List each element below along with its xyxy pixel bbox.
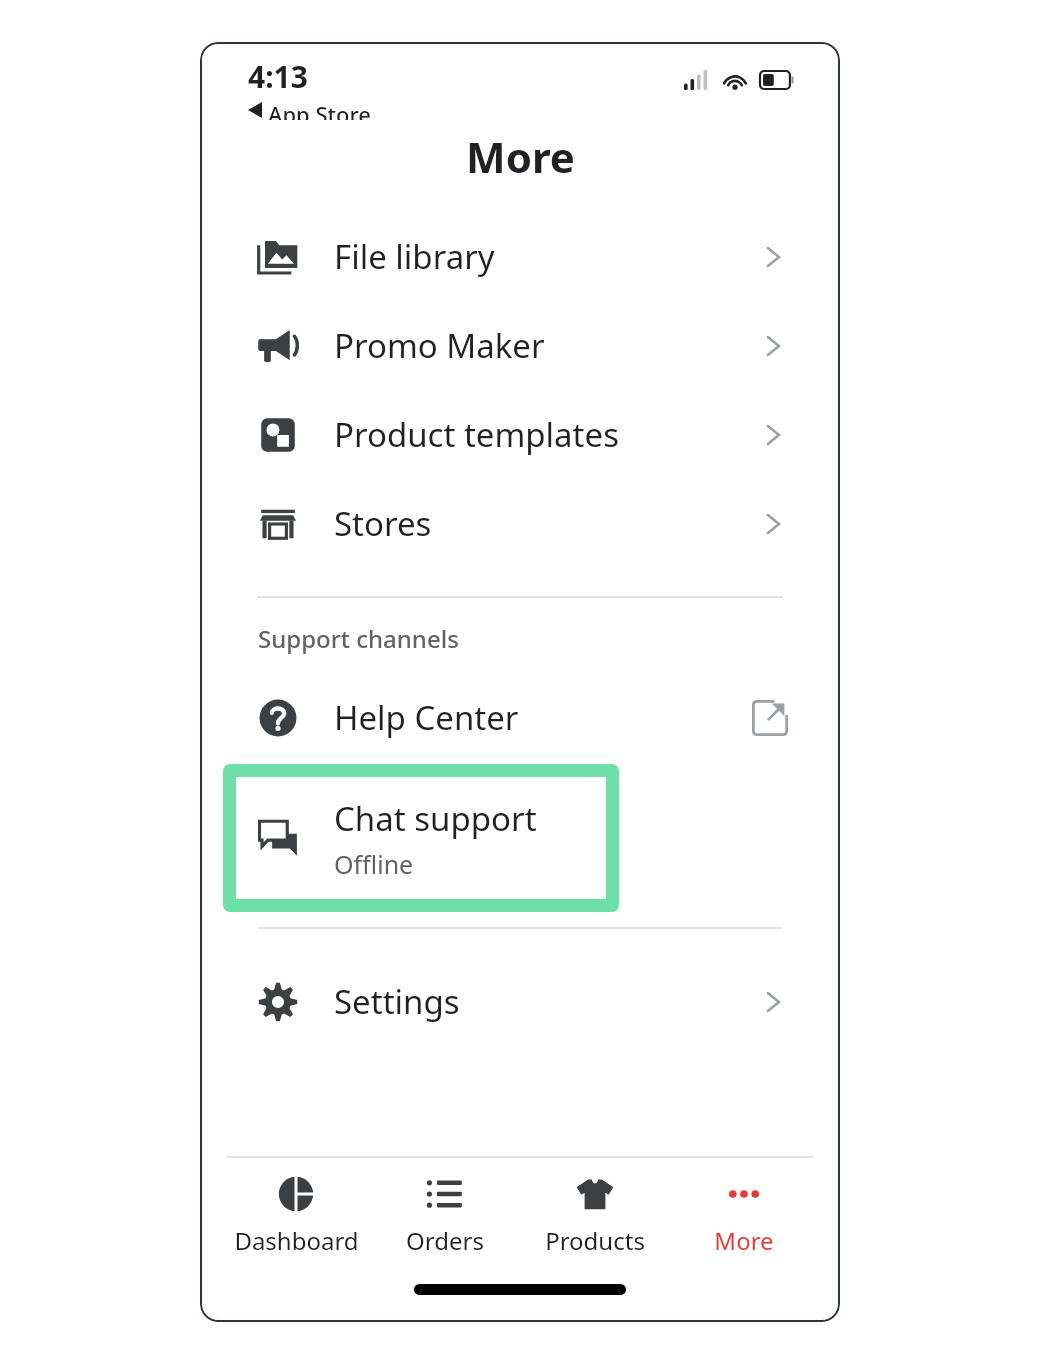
button[interactable]: File library — [200, 212, 840, 301]
staticText: Orders — [406, 1224, 484, 1257]
button[interactable]: Product templates — [200, 390, 840, 479]
staticText: Offline — [334, 847, 414, 881]
button[interactable]: More — [676, 1166, 812, 1263]
staticText: Stores — [334, 501, 758, 546]
staticText: 4:13 — [248, 56, 308, 97]
staticText: Product templates — [334, 412, 758, 457]
staticText: App Store — [268, 99, 371, 120]
button[interactable]: Chat support — [236, 777, 606, 899]
button[interactable]: Help Center — [200, 673, 840, 762]
staticText: Dashboard — [234, 1224, 359, 1257]
button[interactable]: Promo Maker — [200, 301, 840, 390]
other: Open — [758, 331, 788, 361]
button[interactable]: Dashboard — [228, 1166, 364, 1263]
staticText: File library — [334, 234, 758, 279]
staticText: More — [714, 1224, 774, 1257]
button[interactable]: Products — [527, 1166, 663, 1263]
staticText: Support channels — [258, 622, 459, 655]
staticText: Promo Maker — [334, 323, 758, 368]
button[interactable]: Stores — [200, 479, 840, 568]
staticText: More — [466, 128, 575, 185]
staticText: Products — [545, 1224, 645, 1257]
other: Open — [758, 987, 788, 1017]
button[interactable]: Settings — [200, 957, 840, 1046]
staticText: Chat support — [334, 796, 537, 841]
other: Open — [758, 420, 788, 450]
button[interactable]: Orders — [377, 1166, 513, 1263]
other: Open — [758, 242, 788, 272]
other: Open in new window — [752, 700, 788, 736]
staticText: Settings — [334, 979, 758, 1024]
staticText: Help Center — [334, 695, 752, 740]
other: Open — [758, 509, 788, 539]
